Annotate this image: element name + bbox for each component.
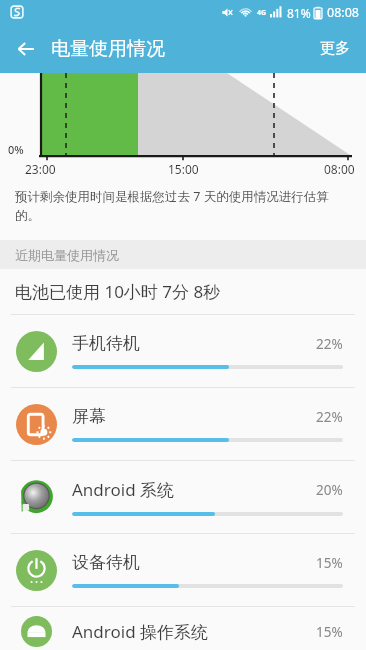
button[interactable]: Android 系统 [0, 461, 366, 533]
staticText: Android 系统 [72, 478, 316, 501]
staticText: 15% [316, 623, 343, 641]
staticText: 0% [8, 142, 24, 157]
button[interactable]: 更多 [304, 27, 366, 70]
staticText: 电量使用情况 [51, 37, 165, 61]
button[interactable]: 设备待机 [0, 534, 366, 606]
staticText: 屏幕 [72, 406, 316, 427]
staticText: 手机待机 [72, 333, 316, 354]
button[interactable]: 手机待机 [0, 315, 366, 387]
staticText: 22% [316, 335, 343, 353]
staticText: 20% [316, 481, 343, 499]
staticText: 更多 [320, 39, 350, 58]
staticText: 预计剩余使用时间是根据您过去 7 天的使用情况进行估算的。 [15, 188, 350, 224]
button[interactable]: 屏幕 [0, 388, 366, 460]
staticText: 15:00 [168, 161, 199, 177]
button[interactable]: 返回 [6, 29, 46, 69]
staticText: 4G [257, 8, 267, 18]
staticText: 15% [316, 554, 343, 572]
staticText: 近期电量使用情况 [15, 247, 119, 263]
button[interactable]: Android 操作系统 [0, 607, 366, 647]
staticText: 23:00 [25, 161, 56, 177]
staticText: Android 操作系统 [72, 620, 316, 643]
staticText: 设备待机 [72, 552, 316, 573]
staticText: 22% [316, 408, 343, 426]
staticText: 81% [287, 5, 311, 21]
staticText: 08:08 [327, 4, 359, 21]
staticText: 08:00 [324, 161, 355, 177]
staticText: 电池已使用 10小时 7分 8秒 [15, 280, 221, 303]
